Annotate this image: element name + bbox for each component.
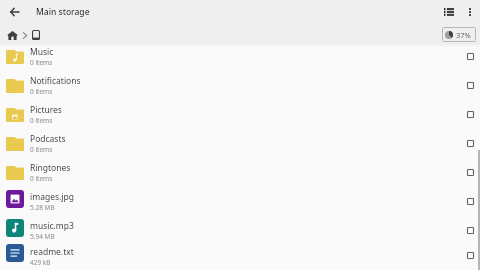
button[interactable]: Select Podcasts [458, 131, 480, 155]
button[interactable]: Internal storage [29, 28, 42, 41]
staticText: 5.28 MB [30, 203, 55, 212]
staticText: Podcasts [30, 133, 66, 145]
staticText: Pictures [30, 104, 62, 116]
button[interactable]: Home [6, 29, 19, 42]
staticText: readme.txt [30, 246, 74, 258]
button[interactable]: images.jpg [0, 187, 480, 216]
button[interactable]: Music [0, 42, 480, 71]
staticText: 0 items [30, 58, 53, 67]
staticText: 0 items [30, 145, 53, 154]
staticText: Notifications [30, 75, 81, 87]
staticText: 429 kB [30, 258, 51, 267]
button[interactable]: View mode [438, 1, 460, 23]
button[interactable]: Select images.jpg [458, 189, 480, 213]
staticText: music.mp3 [30, 220, 74, 232]
button[interactable]: readme.txt [0, 245, 480, 267]
button[interactable]: Pictures [0, 100, 480, 129]
button[interactable]: Select music.mp3 [458, 218, 480, 242]
button[interactable]: Notifications [0, 71, 480, 100]
button[interactable]: Podcasts [0, 129, 480, 158]
staticText: 5.94 MB [30, 232, 55, 241]
staticText: images.jpg [30, 191, 74, 203]
staticText: Main storage [36, 6, 90, 18]
button[interactable]: Select Music [458, 44, 480, 68]
staticText: Music [30, 46, 54, 58]
button[interactable]: Ringtones [0, 158, 480, 187]
button[interactable]: music.mp3 [0, 216, 480, 245]
staticText: 0 items [30, 174, 53, 183]
staticText: 37% [456, 30, 471, 40]
button[interactable]: Select readme.txt [458, 244, 480, 266]
staticText: 0 items [30, 116, 53, 125]
button[interactable]: 37% [442, 27, 476, 42]
button[interactable]: Back [0, 0, 29, 24]
button[interactable]: Select Notifications [458, 73, 480, 97]
button[interactable]: Select Pictures [458, 102, 480, 126]
button[interactable]: Select Ringtones [458, 160, 480, 184]
staticText: Ringtones [30, 162, 71, 174]
button[interactable]: More options [459, 1, 480, 23]
staticText: 0 items [30, 87, 53, 96]
